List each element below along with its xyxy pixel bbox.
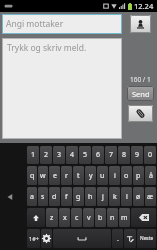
button[interactable]: 5 — [79, 146, 91, 164]
staticText: 2 — [44, 150, 49, 160]
staticText: å — [149, 171, 153, 181]
staticText: . — [117, 234, 119, 244]
staticText: æ — [147, 192, 154, 202]
staticText: g — [76, 192, 81, 202]
staticText: t — [77, 171, 80, 181]
button[interactable]: j — [97, 187, 108, 206]
button[interactable]: g — [73, 187, 84, 206]
staticText: d — [52, 192, 57, 202]
staticText: z — [50, 213, 54, 223]
button[interactable]: l — [121, 187, 132, 206]
staticText: 1#+ — [29, 235, 39, 242]
button[interactable]: s — [38, 187, 48, 206]
button[interactable]: v — [83, 208, 94, 227]
button[interactable]: Tast — [53, 229, 111, 248]
button[interactable]: n — [107, 208, 118, 227]
staticText: ø — [136, 192, 141, 202]
staticText: 4 — [70, 150, 75, 160]
staticText: e — [53, 171, 57, 181]
staticText: 160 / 1 — [130, 75, 151, 84]
button[interactable]: 7 — [105, 146, 117, 164]
staticText: Send — [132, 89, 150, 99]
staticText: Angi mottaker — [6, 18, 64, 30]
button[interactable]: Trykk og skriv meld. — [2, 38, 122, 139]
button[interactable]: Tast — [131, 208, 156, 227]
staticText: r — [65, 171, 68, 181]
button[interactable]: w — [38, 166, 48, 185]
button[interactable]: Tast — [41, 229, 52, 248]
staticText: 8 — [122, 150, 127, 160]
button[interactable]: Legg ved vedlegg — [128, 105, 153, 122]
staticText: p — [136, 171, 141, 181]
button[interactable]: b — [95, 208, 106, 227]
button[interactable]: m — [119, 208, 130, 227]
staticText: y — [89, 171, 93, 181]
button[interactable]: o — [121, 166, 132, 185]
button[interactable]: 6 — [92, 146, 104, 164]
button[interactable]: y — [85, 166, 96, 185]
button[interactable]: i — [109, 166, 120, 185]
staticText: Trykk og skriv meld. — [7, 42, 87, 54]
button[interactable]: e — [49, 166, 60, 185]
staticText: 1 — [31, 150, 36, 160]
staticText: h — [88, 192, 93, 202]
button[interactable]: 8 — [118, 146, 130, 164]
button[interactable]: Velg kontakt — [130, 15, 151, 33]
button[interactable]: 9 — [131, 146, 143, 164]
button[interactable]: k — [109, 187, 120, 206]
staticText: 0 — [148, 150, 153, 160]
button[interactable]: Angi mottaker — [2, 14, 122, 34]
staticText: q — [30, 171, 35, 181]
staticText: l — [126, 192, 128, 202]
button[interactable]: f — [61, 187, 72, 206]
staticText: 3 — [57, 150, 62, 160]
staticText: 9 — [135, 150, 140, 160]
button[interactable]: a — [27, 187, 37, 206]
staticText: a — [30, 192, 34, 202]
button[interactable]: Send — [127, 86, 154, 101]
button[interactable]: 3 — [53, 146, 65, 164]
button[interactable]: å — [145, 166, 156, 185]
button[interactable]: 1 — [27, 146, 39, 164]
staticText: n — [110, 213, 115, 223]
staticText: w — [40, 171, 46, 181]
staticText: s — [41, 192, 45, 202]
button[interactable]: Tast — [27, 229, 40, 248]
button[interactable]: ø — [133, 187, 144, 206]
button[interactable]: q — [27, 166, 37, 185]
button[interactable]: h — [85, 187, 96, 206]
button[interactable]: u — [97, 166, 108, 185]
staticText: j — [102, 192, 104, 202]
staticText: u — [100, 171, 105, 181]
staticText: c — [75, 213, 79, 223]
staticText: b — [98, 213, 103, 223]
button[interactable]: x — [59, 208, 70, 227]
staticText: v — [87, 213, 91, 223]
staticText: Neste — [140, 235, 154, 242]
button[interactable]: p — [133, 166, 144, 185]
button[interactable]: Tast — [112, 229, 123, 248]
staticText: 12.24 — [134, 1, 154, 11]
staticText: 6 — [96, 150, 101, 160]
button[interactable]: z — [46, 208, 58, 227]
button[interactable]: c — [71, 208, 82, 227]
button[interactable]: Tast — [124, 229, 136, 248]
staticText: k — [113, 192, 117, 202]
button[interactable]: Skjul tastatur — [0, 185, 20, 209]
button[interactable]: Tast — [137, 229, 156, 248]
button[interactable]: 4 — [66, 146, 78, 164]
staticText: o — [124, 171, 129, 181]
staticText: 5 — [83, 150, 88, 160]
button[interactable]: t — [73, 166, 84, 185]
staticText: 7 — [109, 150, 114, 160]
button[interactable]: 2 — [40, 146, 52, 164]
button[interactable]: æ — [145, 187, 156, 206]
button[interactable]: 0 — [144, 146, 156, 164]
button[interactable]: d — [49, 187, 60, 206]
staticText: i — [114, 171, 116, 181]
staticText: x — [63, 213, 67, 223]
button[interactable]: Tast — [27, 208, 45, 227]
staticText: m — [121, 213, 128, 223]
staticText: f — [65, 192, 68, 202]
button[interactable]: r — [61, 166, 72, 185]
